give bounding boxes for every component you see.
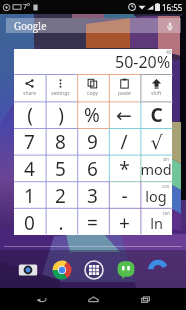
button[interactable]: Home: [78, 288, 108, 310]
button[interactable]: Phone: [148, 260, 168, 280]
button[interactable]: Chrome: [52, 260, 72, 280]
button[interactable]: 7: [14, 128, 45, 155]
staticText: 7: [24, 129, 35, 155]
staticText: 6: [87, 156, 98, 182]
staticText: shift: [151, 90, 162, 97]
button[interactable]: (: [14, 101, 45, 128]
staticText: 5: [55, 156, 66, 182]
staticText: cos: [162, 183, 170, 189]
button[interactable]: Camera: [18, 260, 38, 280]
button[interactable]: -: [108, 182, 140, 209]
button[interactable]: √: [140, 128, 172, 155]
button[interactable]: copy: [76, 74, 108, 101]
button[interactable]: All apps: [84, 260, 104, 280]
staticText: ): [58, 102, 64, 128]
staticText: copy: [87, 90, 98, 97]
staticText: =: [87, 210, 98, 236]
staticText: Google: [14, 19, 47, 33]
staticText: C: [150, 102, 163, 128]
staticText: %: [157, 51, 171, 73]
button[interactable]: =: [76, 209, 108, 236]
button[interactable]: Back: [26, 288, 56, 310]
button[interactable]: Recents: [130, 288, 160, 310]
button[interactable]: paste: [108, 74, 140, 101]
button[interactable]: 0: [14, 209, 45, 236]
button[interactable]: settings: [45, 74, 76, 101]
button[interactable]: sin: [140, 155, 172, 182]
button[interactable]: 9: [76, 128, 108, 155]
staticText: mod: [140, 159, 172, 179]
staticText: 7°: [23, 2, 30, 12]
button[interactable]: ←: [108, 101, 140, 128]
other: Voice search: [165, 21, 175, 31]
staticText: 2: [55, 183, 66, 209]
button[interactable]: 2: [45, 182, 76, 209]
staticText: √: [150, 131, 163, 153]
button[interactable]: ): [45, 101, 76, 128]
button[interactable]: 4: [14, 155, 45, 182]
button[interactable]: 1: [14, 182, 45, 209]
button[interactable]: *: [108, 155, 140, 182]
staticText: .: [58, 210, 64, 236]
staticText: settings: [51, 90, 70, 97]
staticText: 8: [55, 129, 66, 155]
staticText: 3: [87, 183, 98, 209]
staticText: paste: [118, 90, 131, 97]
staticText: log: [145, 186, 167, 206]
staticText: ←: [116, 104, 132, 126]
button[interactable]: +: [108, 209, 140, 236]
button[interactable]: share: [14, 74, 45, 101]
staticText: 4: [24, 156, 35, 182]
button[interactable]: C: [140, 101, 172, 128]
staticText: sin: [163, 156, 170, 162]
staticText: 50-20: [115, 51, 157, 73]
button[interactable]: shift: [140, 74, 172, 101]
button[interactable]: 3: [76, 182, 108, 209]
staticText: 40: [166, 49, 172, 56]
button[interactable]: .: [45, 209, 76, 236]
button[interactable]: /: [108, 128, 140, 155]
staticText: (: [27, 102, 33, 128]
staticText: +: [119, 210, 130, 236]
button[interactable]: 6: [76, 155, 108, 182]
button[interactable]: Google: [6, 18, 181, 33]
staticText: 0: [24, 210, 35, 236]
staticText: 9: [87, 129, 98, 155]
button[interactable]: %: [76, 101, 108, 128]
button[interactable]: 5: [45, 155, 76, 182]
button[interactable]: Hangouts: [116, 260, 136, 280]
staticText: share: [23, 90, 37, 97]
staticText: 1: [24, 183, 35, 209]
staticText: %: [84, 102, 100, 128]
staticText: tan: [163, 210, 170, 216]
staticText: ln: [150, 213, 163, 233]
staticText: /: [120, 129, 128, 155]
button[interactable]: tan: [140, 209, 172, 236]
staticText: -: [121, 183, 128, 209]
button[interactable]: 8: [45, 128, 76, 155]
staticText: *: [119, 156, 130, 182]
staticText: 16:55: [162, 2, 183, 13]
button[interactable]: cos: [140, 182, 172, 209]
